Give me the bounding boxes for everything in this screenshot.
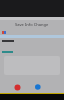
staticText: Save Info Change (15, 22, 49, 27)
